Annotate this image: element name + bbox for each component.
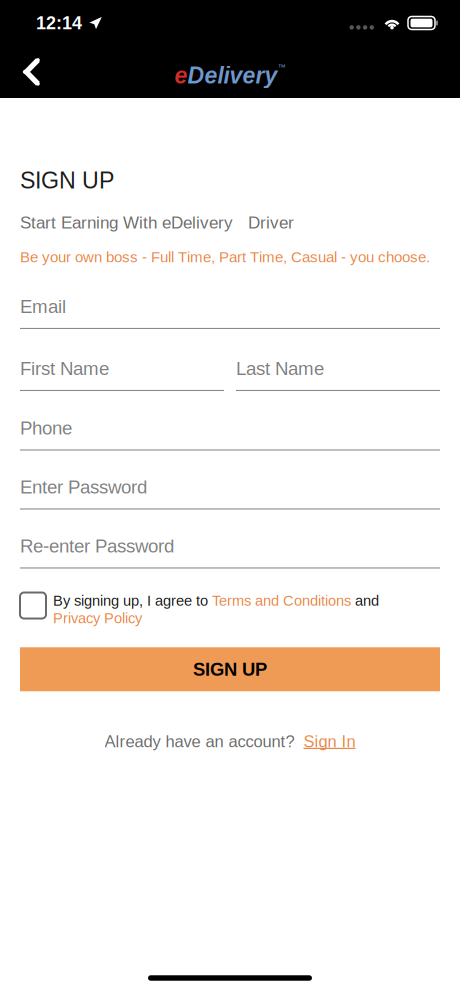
staticText: First Name (20, 358, 109, 379)
staticText: By signing up, I agree to (53, 592, 212, 609)
staticText: Terms and Conditions (212, 592, 351, 609)
staticText: Email (20, 296, 66, 317)
staticText: Already have an account? (104, 732, 294, 751)
staticText: ™ (277, 63, 285, 71)
staticText: Privacy Policy (53, 610, 142, 626)
button[interactable]: Terms and Conditions (212, 592, 351, 609)
staticText: Phone (20, 417, 72, 438)
staticText: Re-enter Password (20, 535, 174, 556)
button[interactable]: Privacy Policy (53, 610, 142, 626)
staticText: e (174, 63, 187, 88)
staticText: Delivery (187, 63, 277, 88)
staticText: SIGN UP (20, 167, 114, 193)
staticText: and (351, 592, 379, 609)
button[interactable]: SIGN UP (20, 647, 440, 691)
staticText: 12:14 (36, 13, 82, 33)
button[interactable]: Agree to terms and conditions (20, 592, 46, 618)
staticText: SIGN UP (193, 659, 267, 680)
staticText: Last Name (236, 358, 324, 379)
staticText: Start Earning With eDelivery Driver (20, 213, 294, 232)
staticText: Enter Password (20, 476, 147, 497)
staticText: Be your own boss - Full Time, Part Time,… (20, 248, 430, 265)
staticText: Sign In (303, 732, 355, 751)
button[interactable]: Sign In (303, 732, 355, 751)
button[interactable]: Back (0, 46, 62, 98)
